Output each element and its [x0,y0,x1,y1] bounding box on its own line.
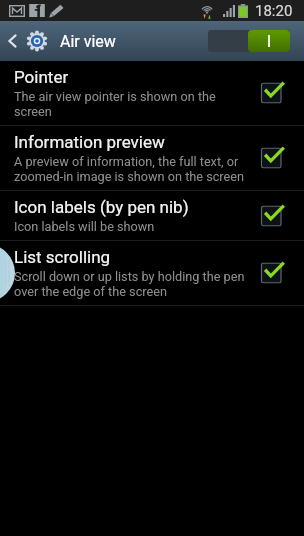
staticText: Icon labels will be shown [14,219,155,234]
staticText: Pointer [14,67,69,87]
staticText: Air view [60,32,116,51]
staticText: Information preview [14,132,165,152]
button[interactable]: Air view on/off [208,30,290,52]
staticText: 18:20 [255,2,293,20]
staticText: A preview of information, the full text,… [14,154,250,184]
staticText: Scroll down or up lists by holding the p… [14,269,250,299]
button[interactable]: Information preview [0,126,304,190]
button[interactable]: List scrolling [0,241,304,305]
button[interactable]: Navigate up [0,21,24,61]
staticText: The air view pointer is shown on the scr… [14,89,250,119]
button[interactable]: Pointer [0,61,304,125]
staticText: Icon labels (by pen nib) [14,197,189,217]
button[interactable]: Icon labels (by pen nib) [0,191,304,240]
staticText: List scrolling [14,247,111,267]
